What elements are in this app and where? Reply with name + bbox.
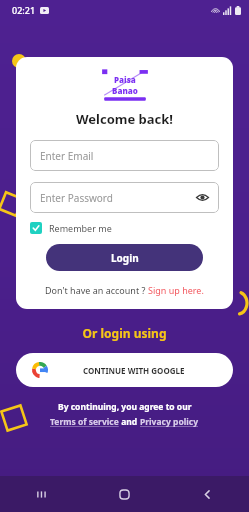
- staticText: Banao: [112, 85, 138, 96]
- button[interactable]: Home: [83, 476, 166, 512]
- button[interactable]: Recent apps: [0, 476, 83, 512]
- button[interactable]: Login: [46, 244, 203, 271]
- staticText: Login: [111, 251, 139, 265]
- staticText: Don't have an account ?: [45, 284, 148, 296]
- staticText: 02:21: [12, 4, 36, 16]
- button[interactable]: Sign up here.: [148, 284, 204, 296]
- staticText: Sign up here.: [148, 284, 204, 296]
- staticText: Welcome back!: [76, 110, 174, 128]
- button[interactable]: Enter Password: [30, 182, 219, 213]
- staticText: Enter Password: [40, 191, 196, 205]
- button[interactable]: Enter Email: [30, 140, 219, 171]
- button[interactable]: CONTINUE WITH GOOGLE: [16, 353, 233, 387]
- staticText: Enter Email: [40, 149, 209, 163]
- staticText: CONTINUE WITH GOOGLE: [83, 365, 185, 376]
- button[interactable]: Privacy policy: [140, 416, 199, 428]
- staticText: Terms of service: [50, 416, 119, 428]
- staticText: and: [119, 416, 140, 428]
- staticText: Paisa: [114, 74, 136, 85]
- other: Show password: [196, 191, 209, 204]
- staticText: Or login using: [0, 325, 249, 341]
- button[interactable]: Remember me: [30, 222, 219, 234]
- staticText: Remember me: [49, 222, 112, 234]
- button[interactable]: Back: [166, 476, 249, 512]
- staticText: By continuing, you agree to our: [58, 401, 192, 413]
- button[interactable]: Terms of service: [50, 416, 119, 428]
- staticText: Privacy policy: [140, 416, 199, 428]
